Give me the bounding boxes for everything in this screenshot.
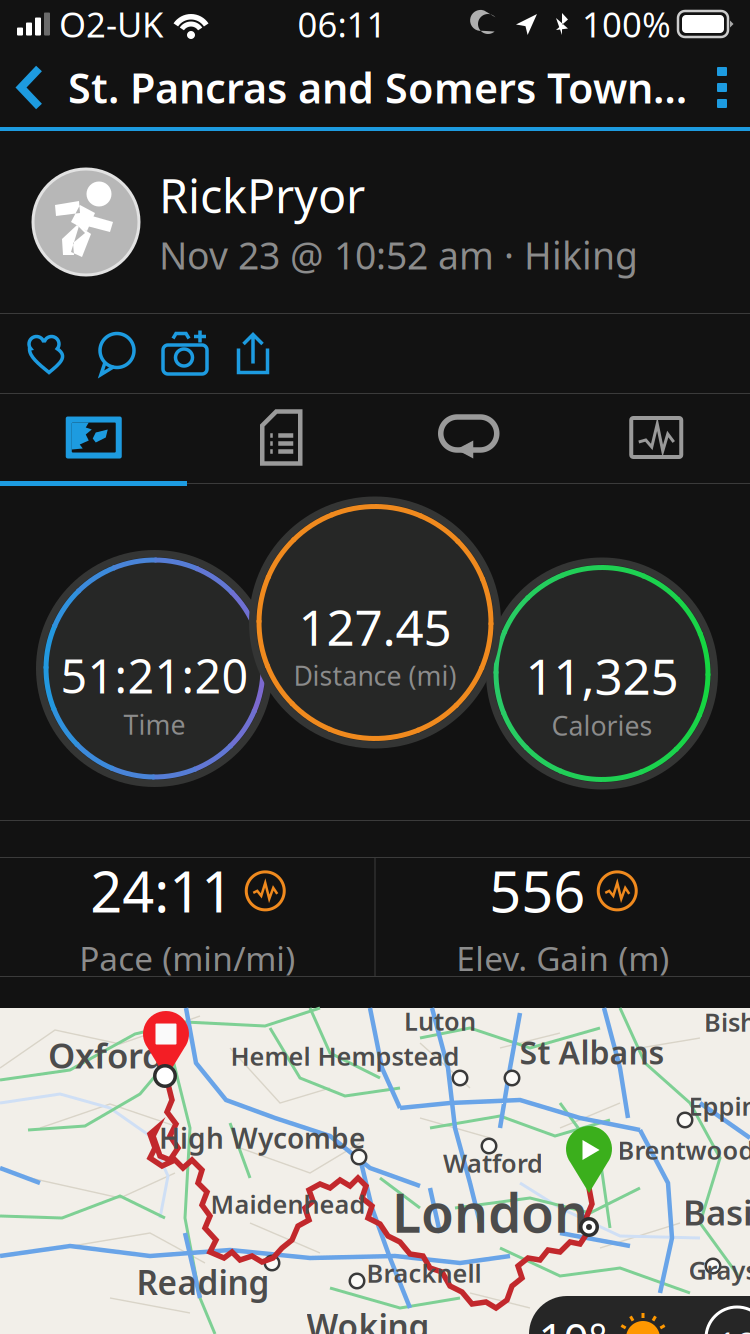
button[interactable]: St. Pancras and Somers Town Ward… — [60, 48, 694, 127]
staticText: Time — [123, 707, 185, 742]
staticText: Oxford — [48, 1032, 164, 1078]
staticText: Distance (mi) — [293, 658, 456, 693]
staticText: Grays — [688, 1253, 750, 1287]
staticText: Eppin — [688, 1089, 750, 1123]
staticText: 11,325 — [525, 643, 678, 708]
staticText: Nov 23 @ 10:52 am · Hiking — [159, 230, 638, 280]
button[interactable]: Laps — [375, 394, 562, 481]
staticText: 18 — [717, 1321, 750, 1334]
staticText: Calories — [551, 708, 652, 743]
staticText: Basil — [683, 1189, 750, 1235]
button[interactable]: Back — [0, 48, 60, 127]
staticText: 24:11 — [90, 854, 233, 928]
staticText: Brentwood — [617, 1133, 750, 1167]
staticText: Elev. Gain (m) — [456, 936, 669, 980]
staticText: 51:21:20 — [60, 644, 248, 706]
button[interactable]: More options — [694, 48, 750, 127]
staticText: Luton — [404, 1004, 476, 1038]
button[interactable]: Comment — [83, 314, 151, 393]
button[interactable]: Like — [15, 314, 83, 393]
staticText: Pace (min/mi) — [79, 936, 295, 980]
staticText: Maidenhead — [210, 1187, 365, 1221]
staticText: Bish — [704, 1005, 750, 1039]
button[interactable]: Add photo — [151, 314, 219, 393]
button[interactable]: Share — [219, 314, 287, 393]
staticText: RickPryor — [159, 164, 365, 226]
staticText: 10° — [538, 1309, 607, 1334]
staticText: St. Pancras and Somers Town Ward… — [68, 60, 694, 115]
staticText: High Wycombe — [159, 1119, 365, 1157]
staticText: St Albans — [519, 1031, 664, 1073]
staticText: Watford — [443, 1146, 543, 1180]
staticText: O2-UK — [59, 1, 163, 47]
staticText: London — [392, 1177, 588, 1247]
button[interactable]: Map — [0, 394, 187, 481]
staticText: 127.45 — [298, 594, 451, 659]
staticText: Bracknell — [366, 1256, 481, 1290]
staticText: Hemel Hempstead — [230, 1039, 459, 1073]
staticText: 100% — [582, 1, 671, 47]
staticText: 556 — [489, 854, 585, 928]
button[interactable]: Charts — [562, 394, 750, 481]
button[interactable]: Details — [187, 394, 375, 481]
staticText: Woking — [306, 1304, 429, 1334]
staticText: 06:11 — [297, 1, 386, 47]
staticText: Reading — [136, 1260, 269, 1304]
